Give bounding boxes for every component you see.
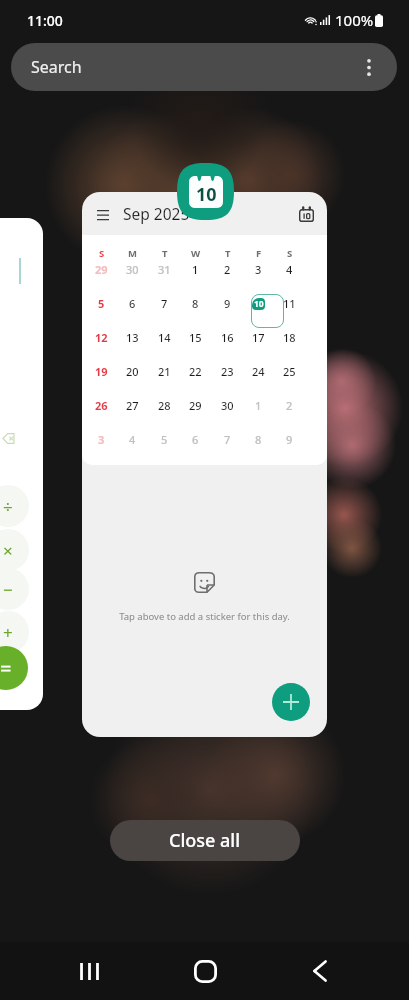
staticText: 2 bbox=[224, 262, 231, 277]
staticText: 16 bbox=[221, 330, 234, 345]
staticText: 5 bbox=[98, 296, 105, 311]
staticText: 11:00 bbox=[27, 11, 63, 30]
button[interactable]: Close all bbox=[110, 820, 300, 861]
staticText: 1 bbox=[192, 262, 199, 277]
staticText: 4 bbox=[286, 262, 293, 277]
staticText: 19 bbox=[95, 364, 108, 379]
button[interactable]: Back bbox=[294, 945, 346, 997]
staticText: Tap above to add a sticker for this day. bbox=[119, 610, 290, 623]
staticText: 5 bbox=[161, 432, 168, 447]
staticText: 17 bbox=[252, 330, 265, 345]
staticText: 29 bbox=[95, 262, 108, 277]
staticText: 6 bbox=[192, 432, 199, 447]
button[interactable]: ÷ bbox=[0, 485, 29, 527]
staticText: 3 bbox=[255, 262, 262, 277]
button[interactable]: Go to today bbox=[293, 201, 319, 227]
staticText: S bbox=[287, 247, 293, 260]
staticText: W bbox=[191, 247, 201, 260]
staticText: = bbox=[0, 655, 12, 682]
staticText: 31 bbox=[158, 262, 171, 277]
staticText: 1 bbox=[255, 398, 262, 413]
button[interactable]: = bbox=[0, 646, 28, 690]
staticText: M bbox=[128, 247, 137, 260]
button[interactable]: Search bbox=[11, 43, 397, 91]
staticText: 10 bbox=[196, 182, 217, 207]
staticText: 7 bbox=[161, 296, 168, 311]
staticText: 25 bbox=[283, 364, 296, 379]
button[interactable]: More options bbox=[354, 52, 384, 82]
staticText: + bbox=[3, 621, 13, 644]
staticText: 11 bbox=[283, 296, 296, 311]
staticText: 28 bbox=[158, 398, 171, 413]
button[interactable]: × bbox=[0, 529, 29, 571]
staticText: T bbox=[225, 247, 231, 260]
staticText: 30 bbox=[221, 398, 234, 413]
staticText: S bbox=[99, 247, 105, 260]
staticText: Sep 2025 bbox=[123, 203, 190, 224]
staticText: 20 bbox=[126, 364, 139, 379]
staticText: F bbox=[256, 247, 262, 260]
staticText: 9 bbox=[286, 432, 293, 447]
button[interactable]: Home bbox=[179, 945, 231, 997]
staticText: 22 bbox=[189, 364, 202, 379]
staticText: 2 bbox=[286, 398, 293, 413]
button[interactable]: Add event bbox=[272, 683, 310, 721]
staticText: 8 bbox=[255, 432, 262, 447]
staticText: Search bbox=[31, 56, 82, 78]
button[interactable]: − bbox=[0, 568, 29, 610]
staticText: Close all bbox=[169, 828, 241, 853]
staticText: 21 bbox=[158, 364, 171, 379]
staticText: 9 bbox=[224, 296, 231, 311]
button[interactable]: ÷ bbox=[0, 218, 43, 710]
staticText: 27 bbox=[126, 398, 139, 413]
staticText: 29 bbox=[189, 398, 202, 413]
staticText: − bbox=[3, 578, 13, 601]
staticText: 6 bbox=[129, 296, 136, 311]
button[interactable]: + bbox=[0, 611, 29, 653]
button[interactable] bbox=[251, 294, 284, 328]
staticText: 23 bbox=[221, 364, 234, 379]
staticText: 26 bbox=[95, 398, 108, 413]
staticText: 3 bbox=[98, 432, 105, 447]
staticText: 14 bbox=[158, 330, 171, 345]
staticText: 13 bbox=[126, 330, 139, 345]
staticText: 24 bbox=[252, 364, 265, 379]
staticText: ÷ bbox=[3, 495, 13, 518]
staticText: 18 bbox=[283, 330, 296, 345]
staticText: 10 bbox=[254, 298, 264, 310]
staticText: 4 bbox=[129, 432, 136, 447]
staticText: 30 bbox=[126, 262, 139, 277]
button[interactable]: Recents bbox=[63, 945, 115, 997]
button[interactable]: Menu bbox=[82, 192, 327, 737]
staticText: 100% bbox=[335, 10, 374, 30]
button[interactable]: Menu bbox=[90, 201, 116, 227]
staticText: 8 bbox=[192, 296, 199, 311]
staticText: T bbox=[162, 247, 168, 260]
staticText: 7 bbox=[224, 432, 231, 447]
staticText: 15 bbox=[189, 330, 202, 345]
staticText: 12 bbox=[95, 330, 108, 345]
staticText: × bbox=[3, 539, 13, 562]
